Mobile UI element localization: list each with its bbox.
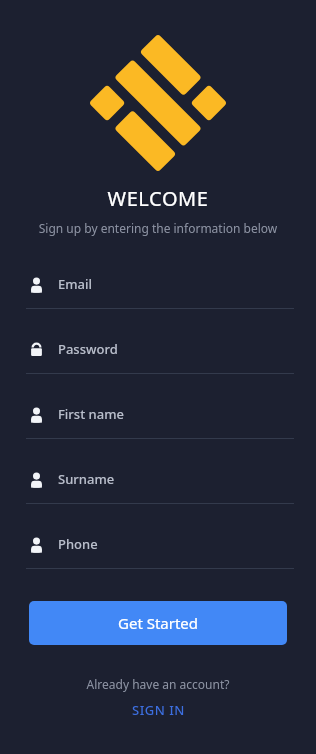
staticText: Phone — [58, 535, 98, 553]
staticText: Already have an account? — [0, 676, 316, 692]
staticText: Sign up by entering the information belo… — [0, 220, 316, 236]
button[interactable]: Surname — [0, 455, 316, 504]
other: App logo — [88, 33, 228, 173]
button[interactable]: Email — [0, 260, 316, 309]
staticText: Get Started — [118, 613, 199, 633]
staticText: Surname — [58, 470, 115, 488]
button[interactable]: First name — [0, 390, 316, 439]
staticText: First name — [58, 405, 124, 423]
staticText: Email — [58, 275, 93, 293]
button[interactable]: Phone — [0, 520, 316, 569]
button[interactable]: Get Started — [29, 601, 287, 645]
staticText: Password — [58, 340, 118, 358]
button[interactable]: SIGN IN — [120, 699, 197, 721]
staticText: WELCOME — [0, 185, 316, 212]
staticText: SIGN IN — [132, 701, 185, 719]
button[interactable]: Password — [0, 325, 316, 374]
